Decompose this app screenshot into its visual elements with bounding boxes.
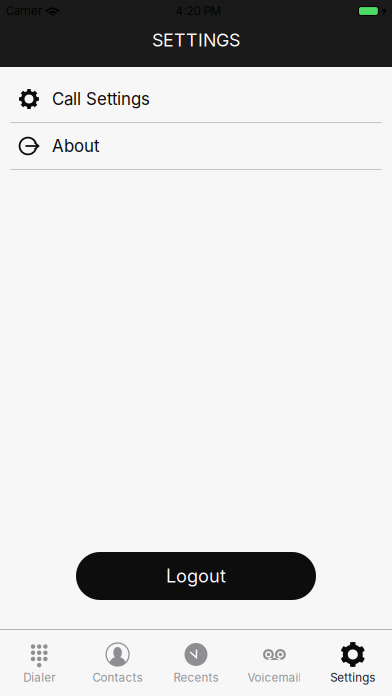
- staticText: Voicemail: [247, 670, 301, 684]
- staticText: Recents: [173, 670, 218, 684]
- staticText: Call Settings: [52, 89, 150, 109]
- button[interactable]: Voicemail: [235, 630, 314, 696]
- staticText: About: [52, 136, 99, 156]
- button[interactable]: Dialer: [0, 630, 78, 696]
- staticText: SETTINGS: [152, 29, 240, 51]
- staticText: Carrier: [6, 4, 42, 18]
- staticText: Dialer: [23, 670, 55, 684]
- button[interactable]: Settings: [314, 630, 392, 696]
- staticText: 4:20 PM: [175, 4, 221, 18]
- button[interactable]: About: [0, 123, 392, 170]
- button[interactable]: Logout: [76, 552, 316, 600]
- button[interactable]: Recents: [157, 630, 235, 696]
- button[interactable]: Contacts: [78, 630, 157, 696]
- staticText: Contacts: [93, 670, 143, 684]
- button[interactable]: Call Settings: [0, 76, 392, 123]
- staticText: Settings: [330, 670, 375, 684]
- staticText: Logout: [166, 565, 226, 587]
